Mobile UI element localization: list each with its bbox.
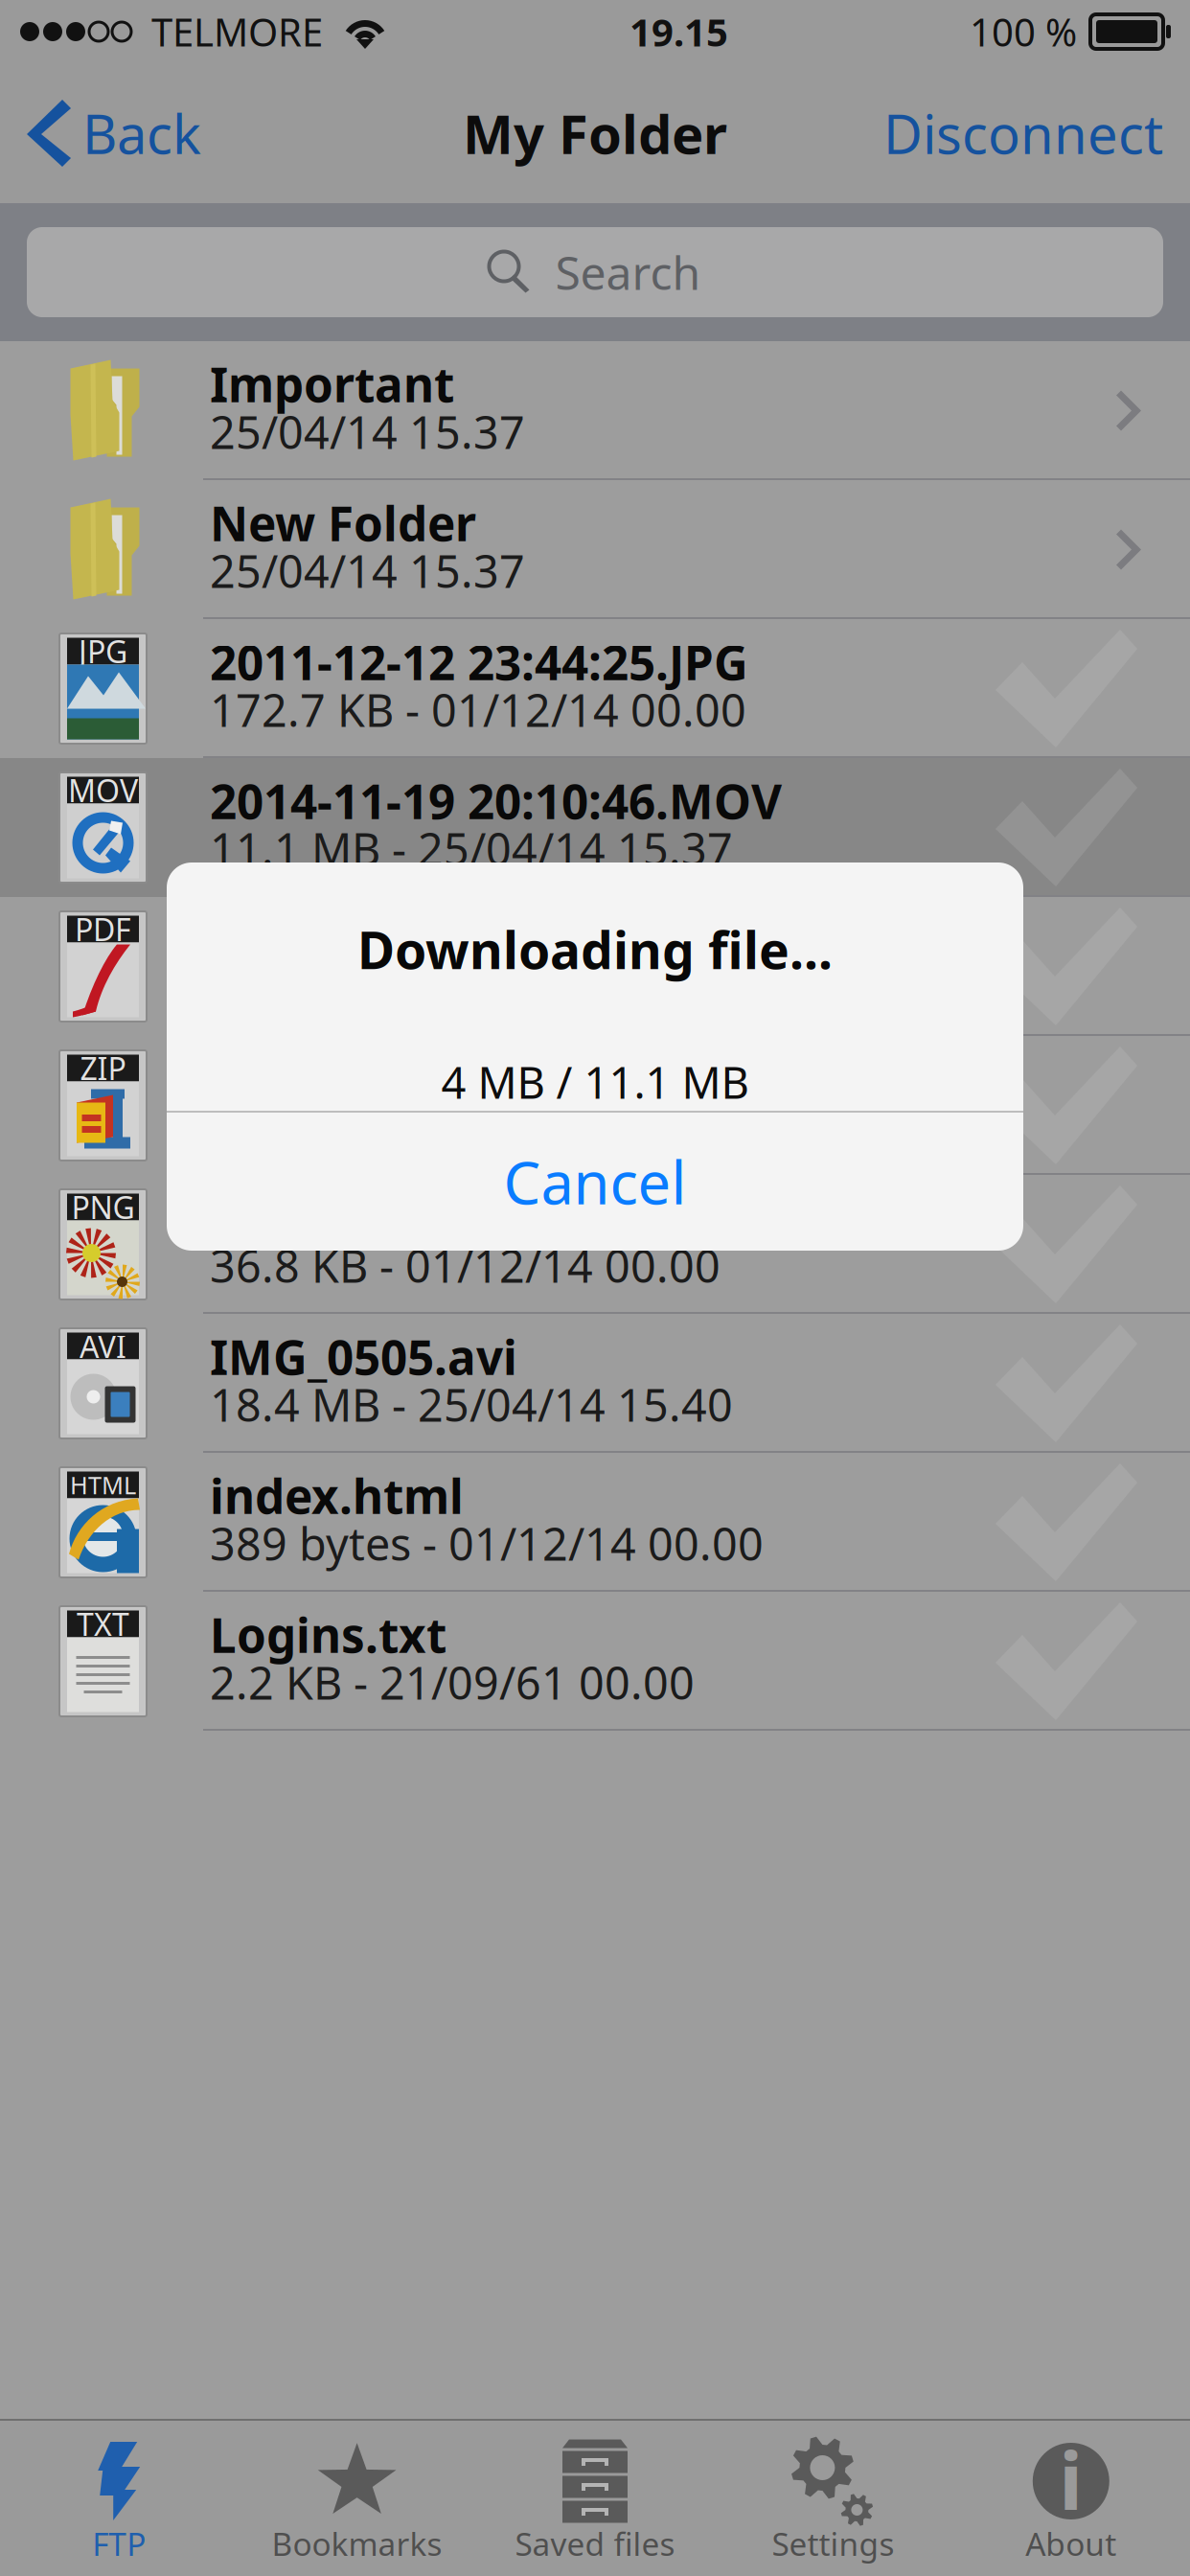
staticText: Archive.zip [210,1047,467,1110]
staticText: Settings [772,2522,894,2565]
staticText: index.html [210,1464,464,1527]
button[interactable]: TXT [0,1592,1190,1731]
staticText: 25/04/14 15.37 [210,541,525,600]
staticText: 4 MB / 11.1 MB [441,1053,749,1111]
button[interactable]: Search [27,227,1163,317]
button[interactable]: New Folder [0,480,1190,619]
staticText: Cancel [503,1143,687,1221]
staticText: 18.4 MB - 25/04/14 15.40 [210,1375,733,1434]
button[interactable]: MOV [0,758,1190,897]
staticText: My Folder [463,98,727,169]
button[interactable]: Settings [714,2421,952,2576]
button[interactable]: PNG [0,1175,1190,1314]
staticText: Disconnect [883,98,1163,169]
staticText: Important [210,352,454,415]
staticText: 25/04/14 15.37 [210,402,525,461]
button[interactable]: AVI [0,1314,1190,1453]
button[interactable]: JPG [0,619,1190,758]
staticText: 19.15 [629,6,728,57]
staticText: FTP [92,2522,146,2565]
staticText: TELMORE [151,6,323,57]
staticText: PNG [71,1187,135,1227]
button[interactable]: Disconnect [874,70,1190,196]
staticText: 2014-11-19 20:10:46.MOV [210,769,782,832]
staticText: 2.2 KB - 21/09/61 00.00 [210,1653,695,1712]
button[interactable]: PDF [0,897,1190,1036]
button[interactable]: Important [0,341,1190,480]
staticText: ZIP [80,1048,126,1088]
staticText: 100 % [970,6,1077,57]
staticText: Saved files [515,2522,675,2565]
staticText: Logins.txt [210,1603,446,1666]
staticText: 11.1 MB - 25/04/14 15.37 [210,819,733,878]
staticText: 2011-12-12 23:44:25.JPG [210,630,748,693]
staticText: HTML [70,1469,136,1501]
button[interactable]: Bookmarks [238,2421,476,2576]
staticText: JPG [79,631,127,672]
staticText: Bookmarks [272,2522,442,2565]
staticText: IMG_0505.avi [210,1325,517,1388]
staticText: Search [555,242,701,303]
button[interactable]: i [952,2421,1190,2576]
staticText: 1.2 MB - 01/12/14 00.00 [210,958,707,1017]
staticText: Manual.pdf [210,908,479,971]
staticText: PDF [75,909,131,950]
staticText: AVI [80,1326,126,1366]
staticText: 36.8 KB - 01/12/14 00.00 [210,1236,721,1295]
staticText: About [1025,2522,1117,2565]
staticText: Downloading file... [357,915,833,983]
button[interactable]: Cancel [167,1113,1023,1251]
staticText: TXT [77,1604,129,1644]
button[interactable]: HTML [0,1453,1190,1592]
staticText: 389 bytes - 01/12/14 00.00 [210,1514,764,1573]
button[interactable]: FTP [0,2421,238,2576]
button[interactable]: Saved files [476,2421,714,2576]
staticText: New Folder [210,491,476,554]
staticText: Back [82,98,201,169]
staticText: MOV [68,770,138,811]
button[interactable]: ZIP [0,1036,1190,1175]
button[interactable]: Back [0,70,211,196]
staticText: i [1059,2427,1083,2532]
staticText: 4.5 MB - 01/12/14 00.00 [210,1097,707,1156]
staticText: 172.7 KB - 01/12/14 00.00 [210,680,746,739]
